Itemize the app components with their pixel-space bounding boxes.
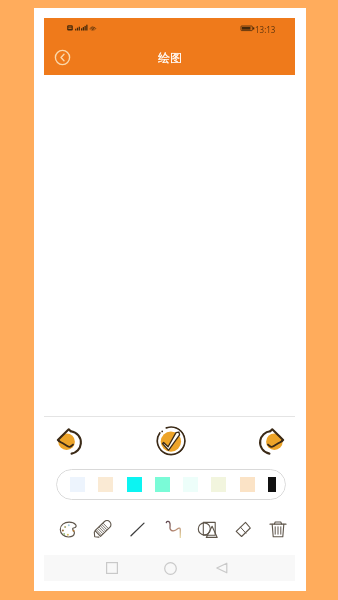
button[interactable]: Brush bbox=[155, 501, 190, 555]
button[interactable]: Pen bbox=[86, 501, 120, 555]
button[interactable]: Recents bbox=[106, 562, 118, 574]
button[interactable]: Shapes bbox=[190, 501, 225, 555]
button[interactable]: Delete bbox=[260, 501, 295, 555]
button[interactable]: Eraser bbox=[225, 501, 260, 555]
button[interactable]: Confirm bbox=[156, 426, 186, 456]
button[interactable]: Line bbox=[120, 501, 155, 555]
button[interactable]: Back bbox=[216, 562, 228, 574]
button[interactable]: Undo bbox=[54, 426, 84, 456]
button[interactable]: Home bbox=[164, 562, 177, 575]
button[interactable]: Palette bbox=[52, 501, 86, 555]
staticText: 13:13 bbox=[255, 24, 276, 35]
button[interactable]: Back bbox=[52, 47, 73, 68]
button[interactable]: Redo bbox=[257, 426, 287, 456]
staticText: 绘图 bbox=[158, 50, 182, 65]
